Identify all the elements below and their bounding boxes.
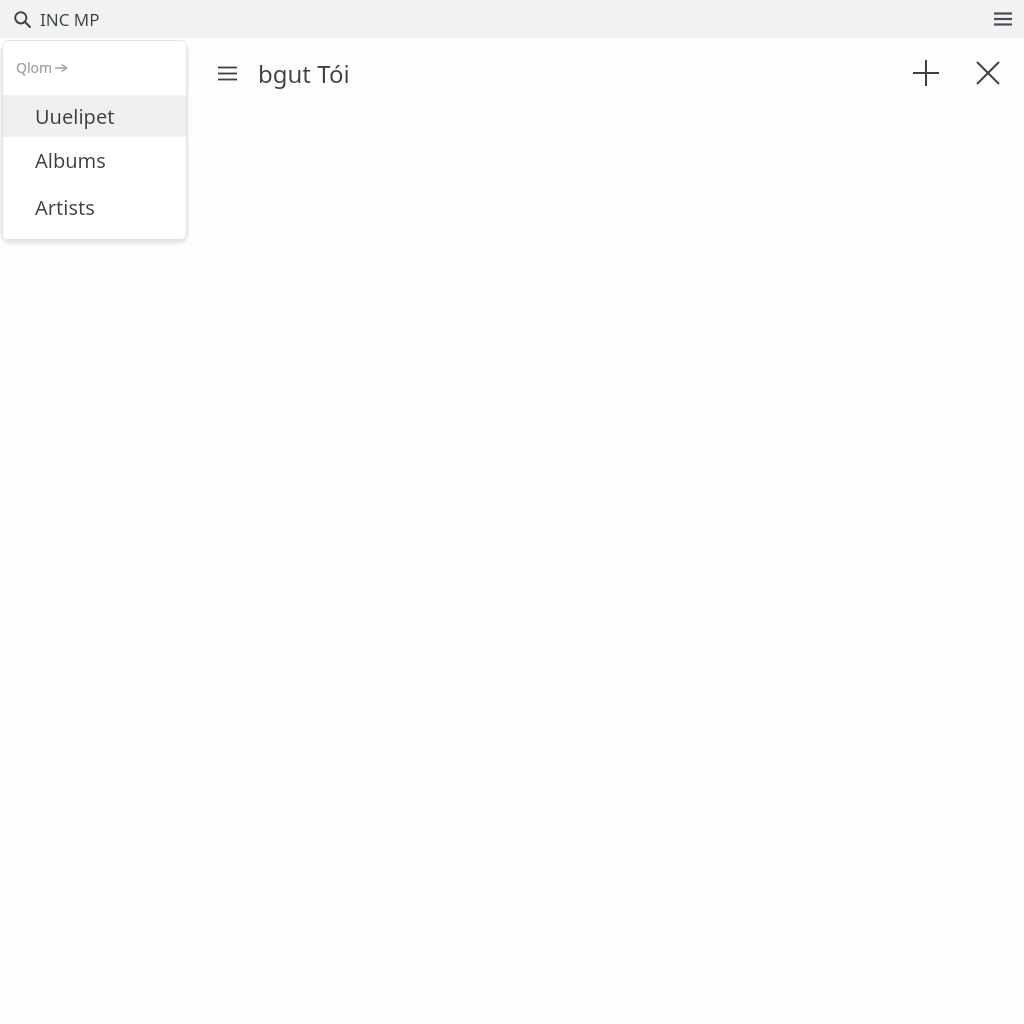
button[interactable]: Menu [988, 4, 1018, 34]
button[interactable]: Search [8, 5, 36, 33]
staticText: INC MP [40, 8, 100, 31]
staticText: bgut Tói [258, 57, 350, 90]
button[interactable]: Albums [2, 137, 187, 184]
button[interactable]: Add [904, 51, 948, 95]
button[interactable]: Qlom [2, 40, 187, 95]
button[interactable]: Close [966, 51, 1010, 95]
button[interactable]: Navigation menu [210, 56, 244, 90]
staticText: Artists [35, 194, 95, 221]
button[interactable]: Uuelipet [2, 95, 187, 137]
staticText: Albums [35, 147, 106, 174]
staticText: Uuelipet [35, 103, 115, 130]
staticText: Qlom [16, 58, 53, 77]
button[interactable]: Artists [2, 184, 187, 231]
